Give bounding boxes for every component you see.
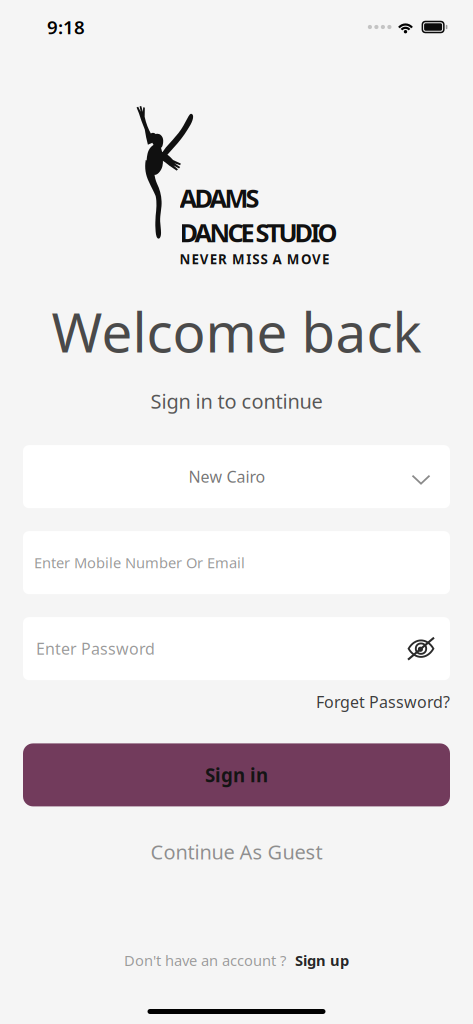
button[interactable]: Sign in (23, 743, 450, 806)
staticText: Welcome back (51, 295, 421, 368)
staticText: Sign in to continue (150, 388, 322, 414)
button[interactable]: Sign up (295, 950, 349, 970)
staticText: DANCE STUDIO (179, 216, 337, 249)
staticText: Enter Mobile Number Or Email (34, 553, 245, 572)
button[interactable]: Continue As Guest (150, 838, 322, 865)
staticText: Continue As Guest (150, 838, 322, 865)
staticText: Don't have an account ? (124, 950, 286, 970)
staticText: 9:18 (47, 15, 85, 39)
staticText: Sign up (295, 950, 349, 970)
button[interactable]: Forget Password? (316, 691, 450, 712)
staticText: Forget Password? (316, 691, 450, 712)
staticText: NEVER MISS A MOVE (179, 250, 329, 268)
button[interactable]: New Cairo (23, 445, 450, 508)
staticText: ADAMS (179, 181, 259, 215)
button[interactable]: Show password (407, 636, 435, 662)
staticText: Enter Password (36, 638, 155, 659)
staticText: New Cairo (188, 466, 265, 487)
staticText: Sign in (205, 762, 268, 787)
